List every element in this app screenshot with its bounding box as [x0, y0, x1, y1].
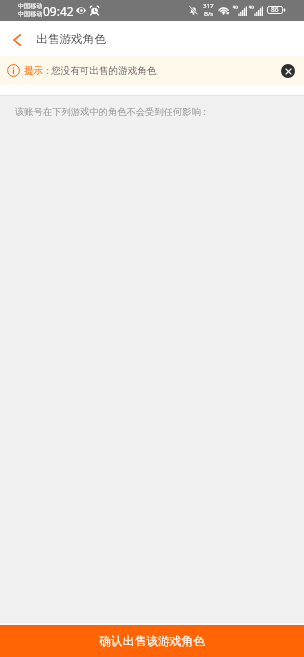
staticText: ： — [200, 106, 210, 118]
staticText: 09:42 — [43, 3, 74, 19]
button[interactable]: 确认出售该游戏角色 — [0, 625, 304, 657]
staticText: ： — [43, 65, 53, 77]
button[interactable]: 返回 — [0, 22, 34, 56]
staticText: 出售游戏角色 — [36, 32, 107, 47]
staticText: 中国移动 — [18, 10, 43, 18]
staticText: 317 — [203, 1, 214, 9]
button[interactable]: 关闭 — [281, 64, 295, 78]
staticText: 提示 — [24, 65, 44, 77]
staticText: 确认出售该游戏角色 — [99, 634, 206, 649]
staticText: 该账号在下列游戏中的角色不会受到任何影响 — [15, 106, 201, 118]
staticText: 86 — [271, 5, 279, 14]
staticText: 您没有可出售的游戏角色 — [51, 65, 157, 77]
staticText: B/s — [204, 9, 214, 17]
staticText: 中国移动 — [18, 2, 43, 10]
